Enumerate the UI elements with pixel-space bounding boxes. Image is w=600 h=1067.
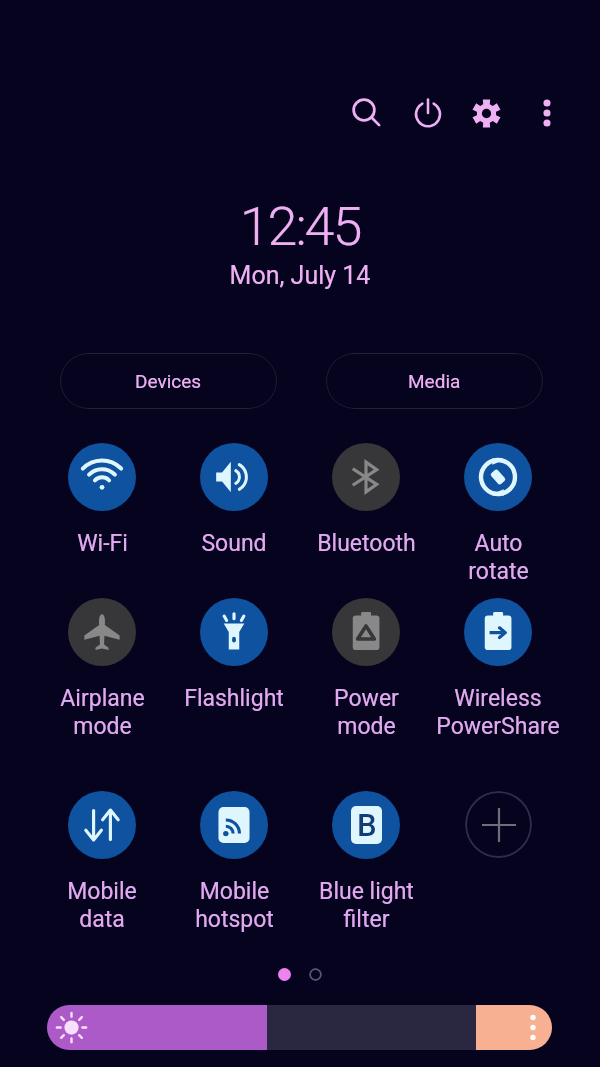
- staticText: Flashlight: [184, 685, 284, 712]
- staticText: Bluetooth: [317, 530, 416, 557]
- button[interactable]: B: [300, 791, 432, 933]
- staticText: Airplane mode: [60, 685, 145, 740]
- button[interactable]: Media: [326, 353, 543, 409]
- button[interactable]: Mobile hotspot: [168, 791, 300, 933]
- button[interactable]: Brightness: [47, 1005, 552, 1050]
- staticText: Blue light filter: [319, 878, 414, 933]
- staticText: Wi-Fi: [77, 530, 128, 557]
- button[interactable]: Sound: [168, 443, 300, 557]
- button[interactable]: Power mode: [300, 598, 432, 740]
- button[interactable]: Bluetooth: [300, 443, 432, 557]
- staticText: Sound: [201, 530, 267, 557]
- staticText: Mon, July 14: [0, 261, 600, 290]
- staticText: Power mode: [334, 685, 399, 740]
- button[interactable]: More options: [520, 86, 574, 140]
- staticText: 12:45: [0, 195, 600, 258]
- button[interactable]: Wireless PowerShare: [432, 598, 564, 740]
- staticText: Mobile data: [67, 878, 137, 933]
- staticText: Auto rotate: [468, 530, 529, 585]
- button[interactable]: Wi-Fi: [36, 443, 168, 557]
- button[interactable]: Flashlight: [168, 598, 300, 712]
- button[interactable]: Add tile: [465, 791, 532, 858]
- button[interactable]: Airplane mode: [36, 598, 168, 740]
- button[interactable]: Devices: [60, 353, 277, 409]
- button[interactable]: Mobile data: [36, 791, 168, 933]
- button[interactable]: Search: [340, 86, 394, 140]
- button[interactable]: Power: [401, 86, 455, 140]
- staticText: Media: [408, 370, 461, 392]
- button[interactable]: Auto rotate: [432, 443, 564, 585]
- staticText: Devices: [135, 370, 202, 392]
- staticText: B: [357, 807, 377, 843]
- staticText: Wireless PowerShare: [436, 685, 560, 740]
- staticText: Mobile hotspot: [195, 878, 274, 933]
- button[interactable]: Settings: [459, 86, 513, 140]
